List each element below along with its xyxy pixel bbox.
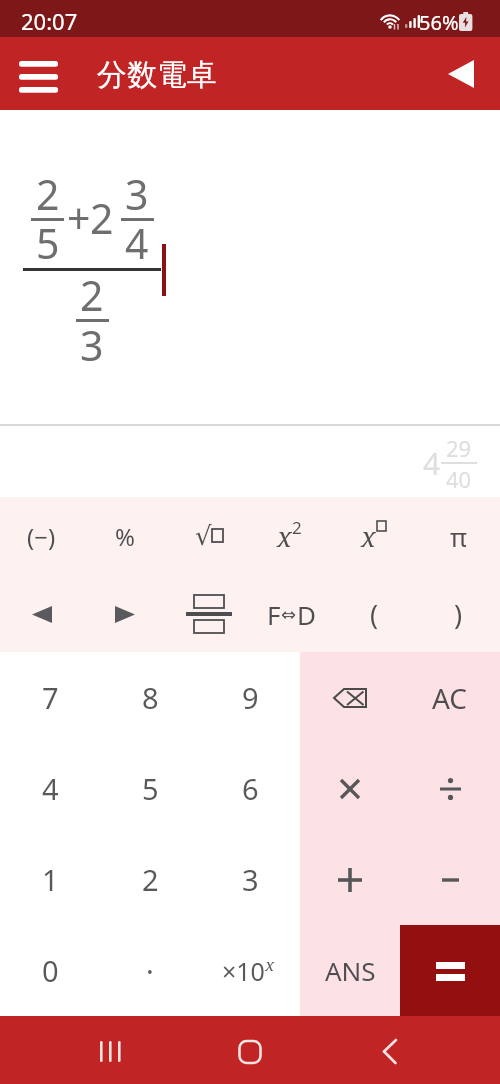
button[interactable]: 6 (200, 743, 300, 834)
button[interactable]: √ (167, 497, 250, 575)
staticText: · (146, 951, 154, 990)
button[interactable] (300, 743, 400, 834)
button[interactable] (440, 55, 484, 95)
staticText: 3 (242, 860, 259, 899)
staticText: AC (432, 679, 468, 717)
staticText: 0 (42, 951, 59, 990)
staticText: (−) (27, 520, 56, 553)
staticText: ⇔ (281, 604, 297, 625)
button[interactable]: 4 (0, 743, 100, 834)
staticText: 40 (446, 464, 472, 494)
staticText: π (450, 519, 467, 554)
button[interactable]: (−) (0, 497, 83, 575)
button[interactable]: 8 (100, 652, 200, 743)
staticText: 5 (142, 769, 159, 808)
staticText: x (277, 518, 292, 555)
staticText: √ (195, 521, 212, 551)
button[interactable]: 5 (100, 743, 200, 834)
button[interactable]: x (250, 497, 333, 575)
button[interactable] (368, 1028, 412, 1072)
staticText: F (267, 597, 281, 632)
staticText: 3 (80, 317, 104, 373)
button[interactable]: F (250, 575, 333, 653)
button[interactable] (300, 652, 400, 743)
button[interactable] (400, 743, 500, 834)
staticText: 6 (242, 769, 259, 808)
staticText: 2 (90, 190, 114, 246)
staticText: 2 (292, 516, 302, 539)
staticText: D (297, 597, 316, 632)
button[interactable] (300, 834, 400, 925)
button[interactable] (167, 575, 250, 653)
staticText: 56% (419, 9, 459, 36)
button[interactable]: ANS (300, 925, 400, 1016)
staticText: 2 (80, 267, 104, 323)
button[interactable] (400, 834, 500, 925)
button[interactable]: 9 (200, 652, 300, 743)
button[interactable] (12, 54, 66, 98)
staticText: 7 (42, 678, 59, 717)
staticText: 29 (446, 433, 472, 463)
staticText: ( (370, 596, 379, 633)
button[interactable]: ( (333, 575, 416, 653)
staticText: 2 (36, 166, 60, 222)
button[interactable]: 7 (0, 652, 100, 743)
button[interactable] (86, 1028, 134, 1072)
staticText: ANS (325, 953, 376, 988)
staticText: 4 (423, 443, 441, 484)
button[interactable]: · (100, 925, 200, 1016)
button[interactable]: % (83, 497, 166, 575)
staticText: 分数電卓 (97, 56, 217, 94)
button[interactable]: AC (400, 652, 500, 743)
button[interactable]: ×10 (200, 925, 300, 1016)
staticText: 8 (142, 678, 159, 717)
button[interactable]: π (417, 497, 500, 575)
button[interactable] (400, 925, 500, 1016)
button[interactable]: x (333, 497, 416, 575)
staticText: x (265, 953, 275, 976)
staticText: 3 (125, 166, 149, 222)
staticText: 4 (125, 215, 149, 271)
button[interactable]: ) (417, 575, 500, 653)
button[interactable]: 2 (100, 834, 200, 925)
button[interactable]: 0 (0, 925, 100, 1016)
staticText: ×10 (222, 954, 265, 988)
button[interactable]: 1 (0, 834, 100, 925)
staticText: % (115, 520, 135, 553)
button[interactable]: 3 (200, 834, 300, 925)
staticText: x (361, 518, 376, 555)
staticText: 5 (36, 215, 60, 271)
button[interactable] (228, 1028, 272, 1072)
button[interactable] (0, 575, 83, 653)
staticText: + (67, 190, 91, 246)
button[interactable] (83, 575, 166, 653)
staticText: 4 (42, 769, 59, 808)
staticText: ) (454, 596, 463, 633)
staticText: 1 (42, 860, 59, 899)
staticText: 20:07 (21, 6, 78, 36)
staticText: 9 (242, 678, 259, 717)
staticText: 2 (142, 860, 159, 899)
